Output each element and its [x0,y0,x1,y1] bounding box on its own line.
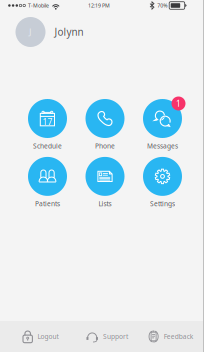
button[interactable]: Lists [76,157,134,208]
button[interactable]: Support [86,321,128,352]
staticText: Feedback [164,332,194,341]
button[interactable]: Settings [134,157,191,208]
button[interactable]: Patients [19,157,76,208]
button[interactable]: Logout [23,321,58,352]
staticText: Messages [147,141,178,150]
staticText: Logout [37,332,58,341]
staticText: J [29,26,32,38]
staticText: 70% [157,2,167,9]
staticText: Phone [95,141,115,150]
staticText: Patients [35,199,60,208]
staticText: T-Mobile [28,2,49,9]
button[interactable]: 17 [19,99,76,150]
button[interactable]: Phone [76,99,134,150]
button[interactable]: J [0,11,203,53]
staticText: Schedule [33,141,62,150]
staticText: 12:19 PM [88,2,110,9]
staticText: 17 [42,116,52,128]
staticText: Support [103,332,128,341]
staticText: 1 [176,98,181,109]
staticText: Jolynn [54,25,83,39]
button[interactable]: 1 [134,99,191,150]
button[interactable]: Feedback [148,321,194,352]
staticText: Settings [150,199,175,208]
staticText: Lists [98,199,111,208]
